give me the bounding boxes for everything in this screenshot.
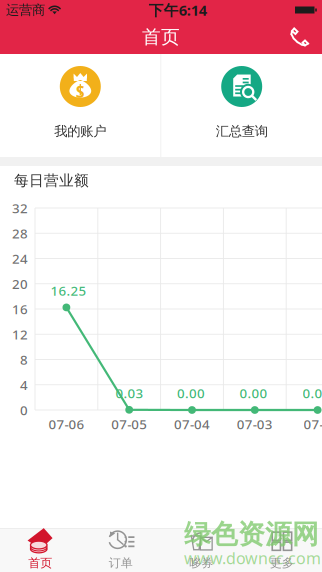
staticText: 20	[12, 275, 28, 293]
staticText: 4	[20, 376, 28, 394]
staticText: 07-0	[304, 415, 322, 433]
staticText: 07-06	[48, 415, 84, 433]
staticText: 07-04	[174, 415, 210, 433]
button[interactable]: 订单	[80, 529, 161, 572]
staticText: 16	[12, 300, 28, 318]
staticText: 汇总查询	[216, 123, 268, 139]
button[interactable]: 哆券	[161, 529, 241, 572]
staticText: 07-05	[111, 415, 147, 433]
staticText: 每日营业额	[14, 171, 89, 189]
staticText: www.downcc.com	[184, 547, 321, 569]
staticText: 首页	[142, 25, 180, 48]
button[interactable]: 首页	[0, 529, 80, 572]
staticText: 更多	[270, 556, 294, 570]
staticText: S	[76, 81, 85, 102]
staticText: 订单	[109, 556, 133, 570]
staticText: 8	[20, 351, 28, 368]
staticText: 0.03	[115, 384, 143, 402]
staticText: 下午6:14	[149, 0, 207, 20]
button[interactable]: 更多	[241, 529, 322, 572]
staticText: 12	[12, 325, 28, 343]
staticText: 绿色资源网	[184, 518, 319, 551]
button[interactable]: 汇总查询	[161, 54, 322, 157]
staticText: 07-03	[237, 415, 273, 433]
button[interactable]: S	[0, 54, 161, 157]
staticText: 28	[12, 224, 28, 242]
staticText: 16.25	[50, 282, 86, 299]
staticText: 首页	[28, 556, 52, 570]
staticText: 运营商	[6, 2, 45, 18]
staticText: 0.00	[177, 384, 205, 402]
button[interactable]: 客服电话	[278, 20, 322, 54]
staticText: 24	[12, 250, 28, 267]
staticText: 32	[12, 199, 28, 217]
staticText: 0.0	[302, 384, 322, 402]
staticText: 哆券	[189, 556, 213, 570]
staticText: 0	[20, 401, 28, 419]
staticText: 我的账户	[54, 123, 106, 139]
staticText: 0.00	[239, 384, 267, 402]
